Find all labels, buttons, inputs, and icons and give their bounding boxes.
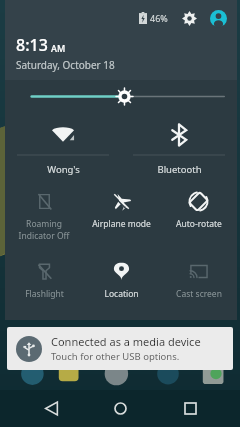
staticText: Cast screen bbox=[176, 288, 222, 300]
staticText: 46% bbox=[150, 12, 168, 24]
button[interactable]: Home bbox=[101, 390, 139, 427]
staticText: Touch for other USB options. bbox=[51, 350, 180, 363]
staticText: AM bbox=[51, 42, 66, 54]
button[interactable]: Brightness bbox=[5, 82, 237, 110]
button[interactable]: Connected as a media device bbox=[7, 327, 233, 370]
button[interactable]: Flashlight bbox=[5, 260, 83, 300]
staticText: 8:13 bbox=[16, 34, 48, 56]
staticText: Auto-rotate bbox=[176, 218, 222, 230]
staticText: Location bbox=[104, 288, 139, 300]
button[interactable]: Settings bbox=[179, 8, 199, 28]
button[interactable]: Cast screen bbox=[160, 260, 237, 300]
button[interactable]: User profile bbox=[208, 8, 228, 28]
button[interactable]: Location bbox=[83, 260, 160, 300]
button[interactable]: Auto-rotate bbox=[160, 190, 237, 230]
button[interactable]: Airplane mode bbox=[83, 190, 160, 230]
staticText: Airplane mode bbox=[92, 218, 151, 230]
staticText: Roaming Indicator Off bbox=[7, 218, 81, 242]
staticText: Flashlight bbox=[25, 288, 64, 300]
button[interactable]: Bluetooth bbox=[121, 122, 237, 176]
staticText: Saturday, October 18 bbox=[16, 58, 115, 72]
button[interactable]: Roaming Indicator Off bbox=[5, 190, 83, 242]
staticText: Bluetooth bbox=[157, 163, 202, 176]
button[interactable]: Wong's bbox=[5, 122, 121, 176]
button[interactable]: Back bbox=[32, 390, 70, 427]
staticText: Wong's bbox=[47, 163, 80, 176]
button[interactable]: Recent apps bbox=[171, 390, 209, 427]
staticText: Connected as a media device bbox=[51, 334, 201, 349]
